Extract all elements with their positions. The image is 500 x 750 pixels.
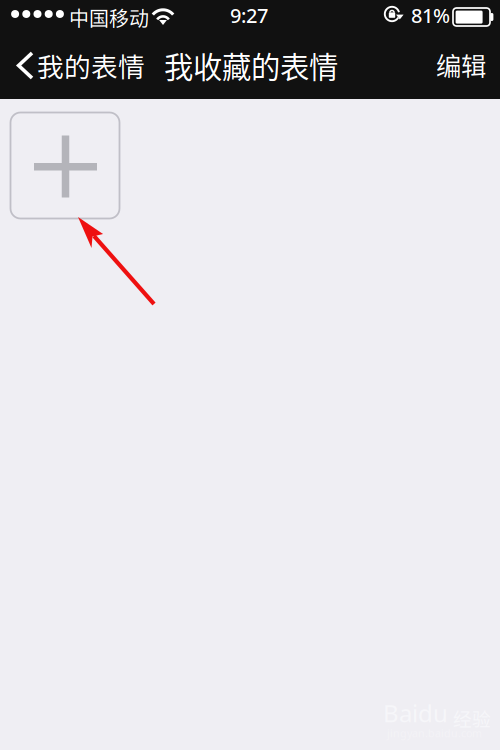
staticText: 我收藏的表情 [164,44,338,86]
staticText: 81% [411,2,450,29]
staticText: 编辑 [436,46,486,83]
button[interactable]: 编辑 [425,40,495,86]
staticText: 我的表情 [37,46,145,85]
staticText: 中国移动 [69,3,149,32]
button[interactable]: Add sticker [10,112,119,218]
staticText: 9:27 [230,2,268,29]
button[interactable]: 我的表情 [14,40,154,90]
